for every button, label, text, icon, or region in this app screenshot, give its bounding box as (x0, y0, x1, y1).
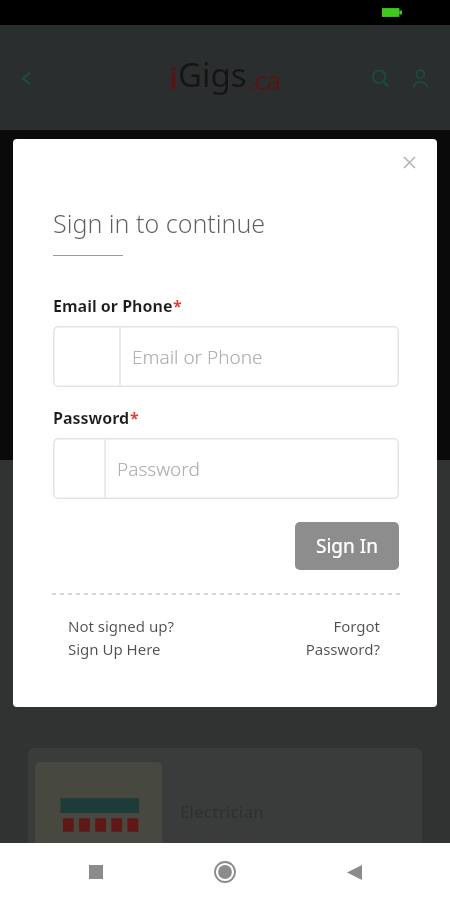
button[interactable]: Electrician (28, 748, 422, 898)
staticText: * (130, 407, 139, 429)
button[interactable]: Not signed up? (68, 616, 174, 659)
button[interactable]: Close (393, 146, 425, 178)
button[interactable]: Account (400, 58, 440, 98)
staticText: Tuesday Calgary AB (180, 828, 300, 846)
staticText: Email or Phone (132, 344, 263, 370)
staticText: Password (53, 407, 130, 429)
staticText: * (173, 295, 182, 317)
button[interactable]: Recents (74, 850, 118, 894)
button[interactable]: Back (4, 56, 48, 100)
staticText: Gigs (178, 52, 247, 97)
staticText: Password (117, 456, 200, 482)
button[interactable]: Back (332, 850, 376, 894)
button[interactable]: Home (203, 850, 247, 894)
staticText: Sign Up Here (68, 639, 161, 659)
button[interactable]: Sign In (295, 522, 399, 570)
button[interactable]: Search (360, 58, 400, 98)
staticText: Password? (305, 639, 380, 659)
staticText: i (169, 58, 178, 97)
button[interactable]: Password (53, 438, 399, 499)
staticText: Sign in to continue (53, 206, 266, 240)
staticText: Not signed up? (68, 616, 174, 636)
staticText: Forgot (333, 616, 380, 636)
button[interactable]: Forgot (305, 616, 380, 659)
staticText: Email or Phone (53, 295, 173, 317)
button[interactable]: Email or Phone (53, 326, 399, 387)
staticText: .ca (247, 62, 282, 97)
staticText: Electrician (180, 800, 264, 823)
staticText: Sign In (316, 533, 378, 559)
